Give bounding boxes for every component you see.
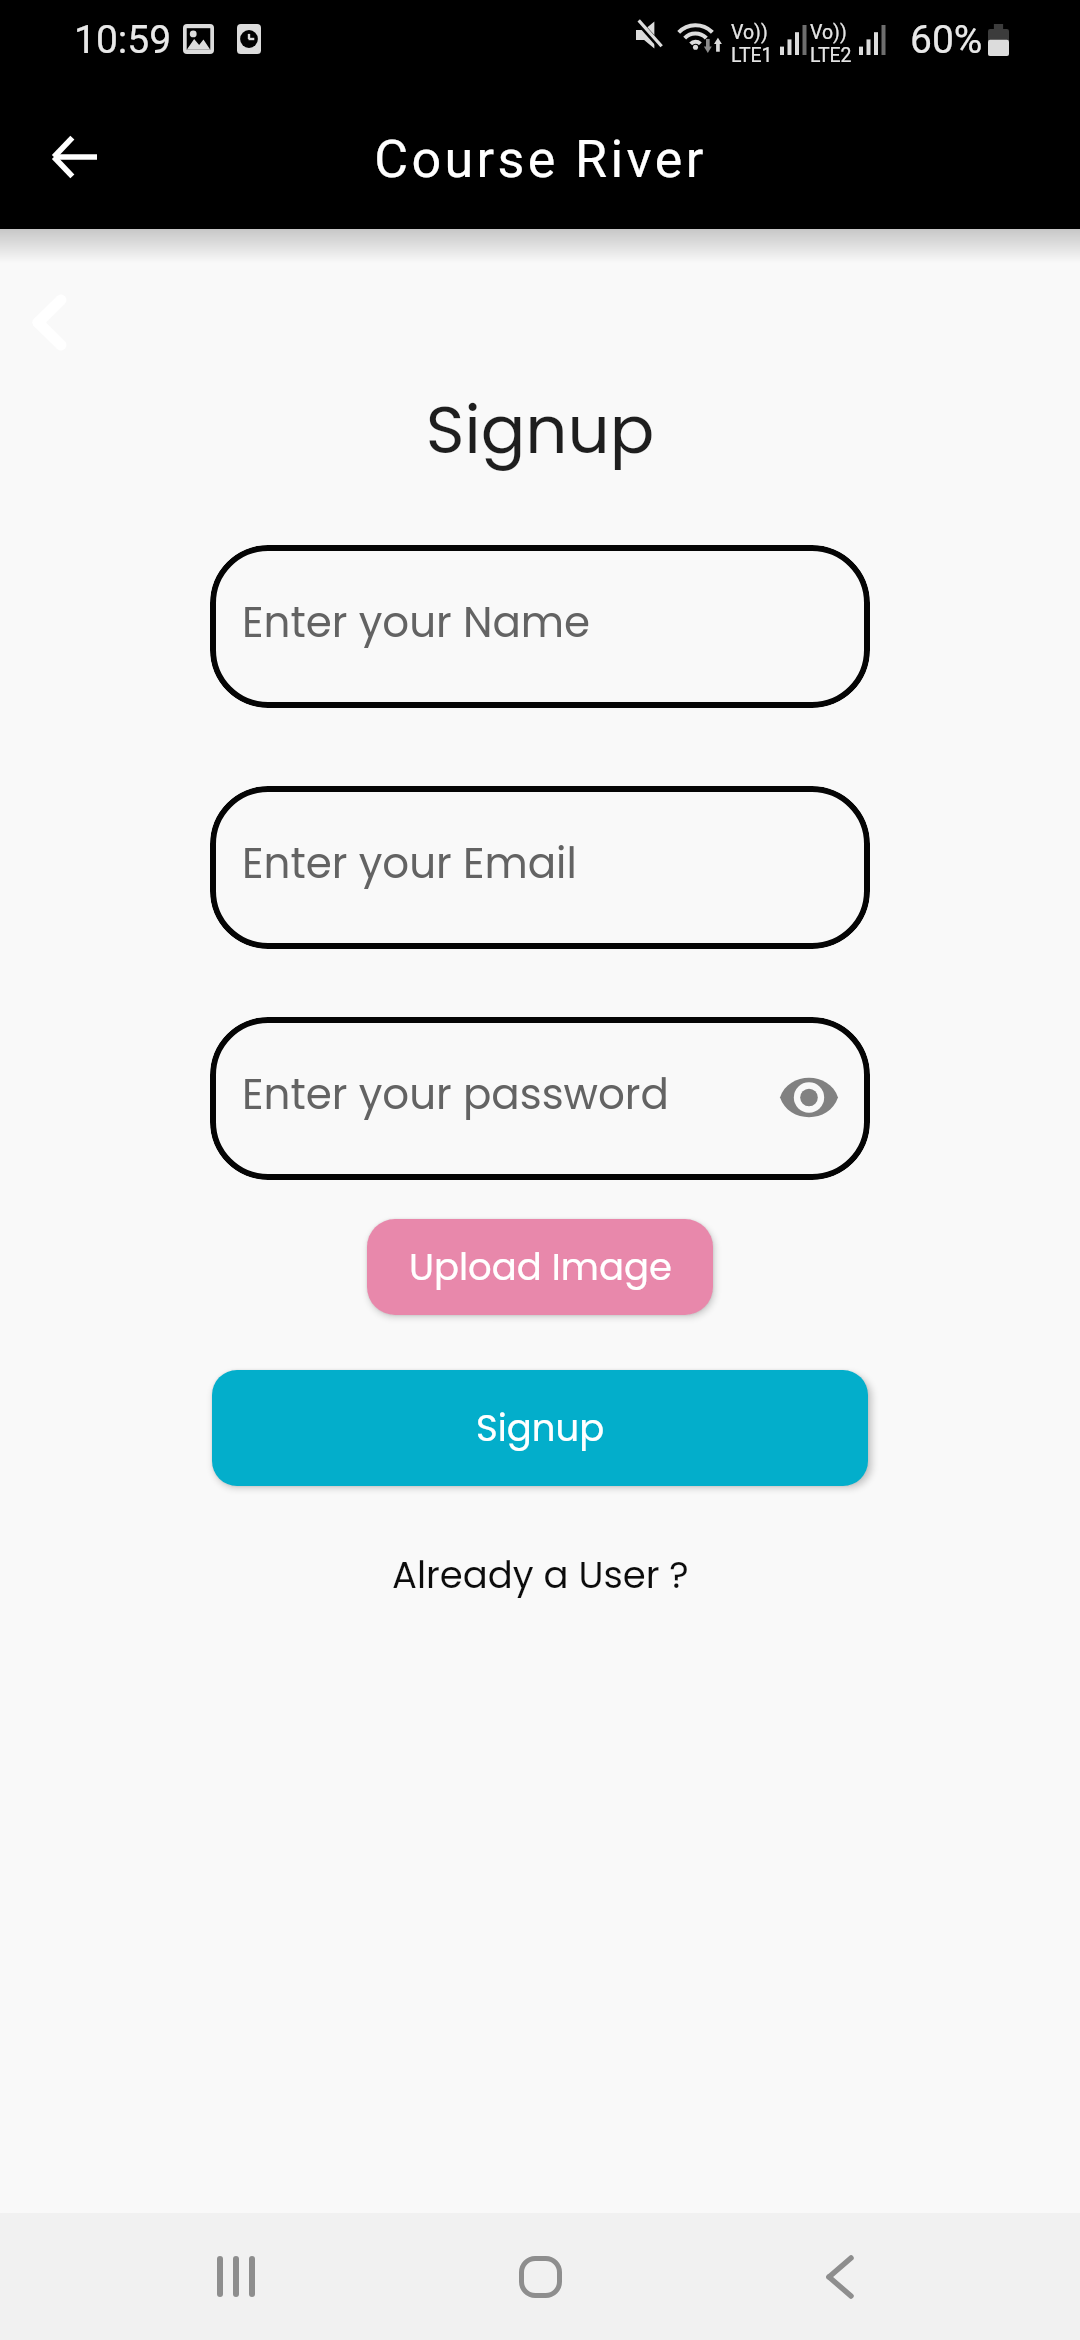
staticText: Vo)) (731, 21, 768, 44)
staticText: 10:59 (74, 17, 172, 63)
staticText: Enter your password (242, 1065, 669, 1124)
staticText: Vo)) (810, 21, 847, 44)
button[interactable]: Home (470, 2213, 610, 2340)
button[interactable]: Signup (212, 1370, 868, 1486)
staticText: Enter your Email (242, 834, 577, 893)
button[interactable]: Back (30, 118, 120, 208)
staticText: Signup (476, 1402, 605, 1454)
staticText: Enter your Name (242, 593, 591, 652)
staticText: Signup (0, 384, 1080, 476)
button[interactable]: Enter your password (210, 1017, 870, 1180)
button[interactable]: Recent apps (166, 2213, 306, 2340)
button[interactable]: Enter your Email (210, 786, 870, 949)
button[interactable]: Show password (777, 1065, 841, 1129)
button[interactable]: Back (770, 2213, 910, 2340)
staticText: Already a User ? (392, 1549, 689, 1601)
staticText: LTE2 (810, 44, 852, 67)
staticText: Upload Image (409, 1241, 672, 1293)
staticText: LTE1 (731, 44, 773, 67)
staticText: 60% (910, 17, 983, 63)
button[interactable]: Enter your Name (210, 545, 870, 708)
button[interactable]: Upload Image (367, 1219, 713, 1315)
staticText: Course River (374, 129, 707, 190)
button[interactable]: Already a User ? (374, 1543, 707, 1607)
